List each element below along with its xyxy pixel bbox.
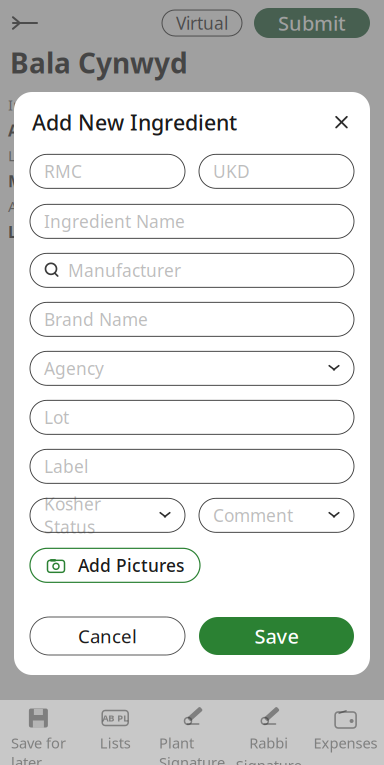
button[interactable]: RMC — [30, 154, 185, 188]
button[interactable]: Comment — [199, 498, 354, 532]
staticText: Signature — [236, 755, 302, 765]
button[interactable]: Label — [30, 449, 354, 483]
staticText: Ingredient Name — [44, 210, 185, 233]
button[interactable]: Cancel — [30, 617, 185, 655]
staticText: Rabbi — [249, 733, 288, 752]
button[interactable]: Kosher Status — [30, 498, 185, 532]
staticText: Comment — [213, 504, 293, 527]
button[interactable]: Virtual — [162, 10, 242, 36]
staticText: Ingredient — [8, 95, 80, 115]
staticText: Kosher Status — [44, 492, 101, 538]
staticText: Brand Name — [44, 308, 148, 331]
staticText: Manufacturer — [68, 259, 181, 282]
button[interactable]: Agency — [30, 351, 354, 385]
button[interactable]: Ingredient Name — [30, 204, 354, 238]
button[interactable]: Save — [199, 617, 354, 655]
button[interactable]: Brand Name — [30, 302, 354, 336]
staticText: Virtual — [176, 11, 228, 34]
staticText: Label — [44, 455, 88, 478]
button[interactable]: Save for later — [0, 700, 77, 765]
button[interactable]: Expenses — [307, 700, 384, 752]
staticText: Submit — [278, 10, 346, 36]
staticText: RMC — [44, 160, 82, 183]
staticText: Lot — [44, 406, 69, 429]
staticText: Label — [8, 221, 52, 242]
button[interactable]: ⸮ — [154, 700, 230, 765]
staticText: AB — [102, 712, 114, 724]
staticText: Add Pictures — [78, 554, 184, 577]
staticText: Plant Signature — [159, 733, 225, 765]
button[interactable]: ⸮ — [230, 700, 307, 765]
button[interactable]: Add Pictures — [30, 548, 200, 582]
staticText: Save for later — [11, 733, 66, 765]
staticText: Cancel — [78, 624, 137, 648]
staticText: UKD — [213, 160, 250, 183]
button[interactable]: UKD — [199, 154, 354, 188]
staticText: PL — [117, 712, 128, 724]
staticText: Agency — [8, 197, 57, 216]
staticText: Add New Ingredient — [32, 108, 237, 136]
staticText: Manufacturer — [8, 170, 118, 192]
staticText: Bala Cynwyd — [10, 44, 188, 81]
button[interactable]: Close — [331, 112, 352, 133]
staticText: ⸮ — [268, 717, 269, 719]
staticText: Apple — [8, 120, 54, 141]
button[interactable]: Manufacturer — [30, 253, 354, 287]
staticText: Expenses — [314, 733, 378, 752]
button[interactable]: Back — [0, 8, 50, 38]
button[interactable]: AB — [77, 700, 154, 752]
staticText: Agency — [44, 357, 104, 380]
staticText: Lot — [8, 146, 30, 165]
staticText: Lists — [100, 733, 131, 752]
button[interactable]: Submit — [254, 8, 370, 38]
button[interactable]: Lot — [30, 400, 354, 434]
staticText: Save — [254, 623, 298, 649]
